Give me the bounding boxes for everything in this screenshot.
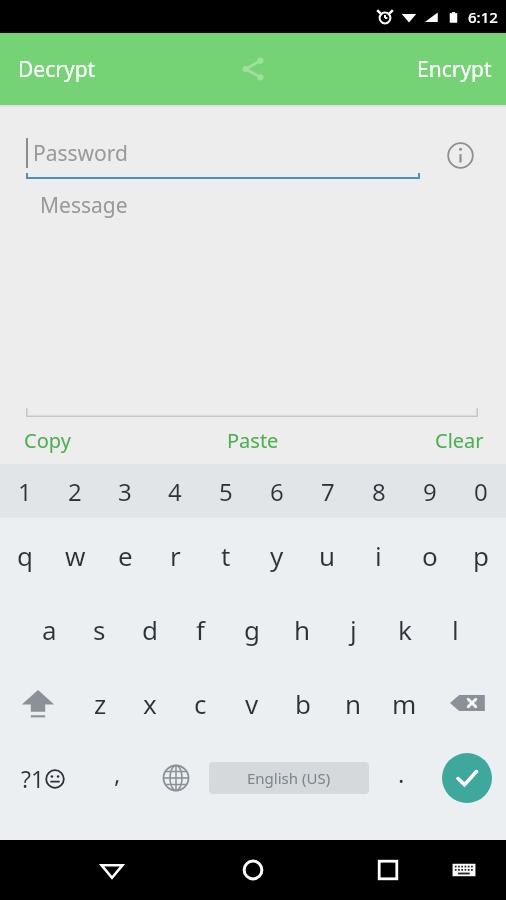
button[interactable]: Change language [148, 740, 204, 816]
button[interactable]: z [75, 666, 125, 740]
button[interactable]: y [251, 518, 302, 592]
button[interactable]: Symbols [0, 740, 86, 816]
staticText: 4 [168, 475, 182, 508]
button[interactable]: n [328, 666, 379, 740]
staticText: p [473, 538, 489, 573]
button[interactable]: 4 [150, 464, 200, 518]
staticText: g [244, 612, 260, 647]
staticText: y [270, 538, 284, 573]
button[interactable]: x [125, 666, 175, 740]
button[interactable]: 7 [302, 464, 353, 518]
staticText: i [375, 538, 382, 573]
staticText: x [143, 686, 157, 721]
button[interactable]: Recent apps [358, 840, 418, 900]
button[interactable]: q [0, 518, 50, 592]
button[interactable]: w [50, 518, 100, 592]
button[interactable]: , [86, 740, 148, 816]
button[interactable]: Share [227, 43, 279, 95]
staticText: m [392, 686, 417, 721]
button[interactable]: Backspace [430, 666, 506, 740]
button[interactable]: l [430, 592, 481, 666]
button[interactable]: 9 [404, 464, 455, 518]
staticText: 8 [372, 475, 386, 508]
staticText: q [17, 538, 33, 573]
button[interactable]: e [100, 518, 150, 592]
staticText: Clear [435, 427, 484, 454]
button[interactable]: 5 [200, 464, 251, 518]
staticText: d [142, 612, 158, 647]
button[interactable]: p [455, 518, 506, 592]
button[interactable]: Paste [168, 417, 337, 463]
staticText: b [295, 686, 311, 721]
staticText: s [93, 612, 106, 647]
button[interactable]: i [353, 518, 404, 592]
staticText: 5 [219, 475, 233, 508]
button[interactable]: v [226, 666, 277, 740]
staticText: 6:12 [468, 7, 498, 27]
button[interactable]: Decrypt [0, 33, 114, 105]
button[interactable]: Shift [0, 666, 75, 740]
staticText: 3 [118, 475, 132, 508]
staticText: o [422, 538, 438, 573]
button[interactable]: j [328, 592, 379, 666]
button[interactable]: h [277, 592, 328, 666]
button[interactable]: g [226, 592, 277, 666]
staticText: u [319, 538, 336, 573]
button[interactable]: 6 [251, 464, 302, 518]
button[interactable]: Encrypt [399, 33, 506, 105]
button[interactable]: 8 [353, 464, 404, 518]
staticText: a [42, 612, 57, 647]
staticText: 2 [68, 475, 82, 508]
button[interactable]: k [379, 592, 430, 666]
button[interactable]: Switch keyboard [438, 844, 490, 896]
staticText: l [452, 612, 459, 647]
button[interactable]: a [24, 592, 74, 666]
button[interactable]: o [404, 518, 455, 592]
button[interactable]: Back [82, 840, 142, 900]
button[interactable]: . [374, 740, 428, 816]
button[interactable]: 1 [0, 464, 50, 518]
button[interactable]: Home [223, 840, 283, 900]
staticText: 7 [321, 475, 335, 508]
staticText: r [170, 538, 181, 573]
button[interactable]: b [277, 666, 328, 740]
button[interactable]: d [124, 592, 175, 666]
button[interactable]: 0 [455, 464, 506, 518]
button[interactable]: Info [436, 131, 484, 179]
staticText: Decrypt [18, 55, 96, 84]
button[interactable]: Message [26, 185, 478, 417]
staticText: c [194, 686, 207, 721]
staticText: Password [33, 139, 128, 168]
button[interactable]: Copy [0, 417, 168, 463]
staticText: v [245, 686, 259, 721]
staticText: n [345, 686, 362, 721]
button[interactable]: s [74, 592, 124, 666]
button[interactable]: Clear [337, 417, 506, 463]
staticText: . [398, 757, 405, 790]
button[interactable]: 2 [50, 464, 100, 518]
staticText: 1 [18, 475, 32, 508]
staticText: f [196, 612, 205, 647]
button[interactable]: u [302, 518, 353, 592]
staticText: h [294, 612, 311, 647]
staticText: English (US) [247, 768, 331, 788]
staticText: z [94, 686, 107, 721]
button[interactable]: Space [209, 740, 369, 816]
button[interactable]: Enter [428, 740, 506, 816]
staticText: t [221, 538, 231, 573]
staticText: 6 [270, 475, 284, 508]
button[interactable]: f [175, 592, 226, 666]
staticText: 9 [423, 475, 437, 508]
staticText: j [350, 612, 357, 647]
button[interactable]: m [379, 666, 430, 740]
button[interactable]: t [200, 518, 251, 592]
staticText: k [398, 612, 412, 647]
button[interactable]: c [175, 666, 226, 740]
staticText: Encrypt [417, 55, 492, 84]
staticText: w [65, 538, 86, 573]
button[interactable]: r [150, 518, 200, 592]
button[interactable]: 3 [100, 464, 150, 518]
staticText: 0 [474, 475, 488, 508]
staticText: e [118, 538, 133, 573]
button[interactable]: Password [26, 133, 420, 179]
